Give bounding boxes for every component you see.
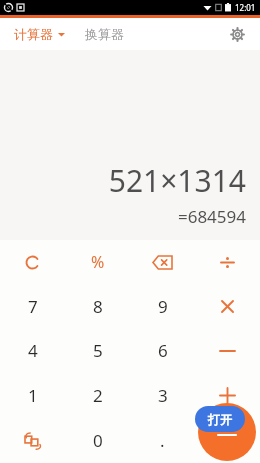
- button[interactable]: Multiply: [195, 284, 260, 328]
- staticText: 打开: [208, 412, 232, 427]
- button[interactable]: 4: [0, 328, 65, 373]
- button[interactable]: %: [65, 240, 130, 284]
- button[interactable]: Minus: [195, 328, 260, 373]
- staticText: 1: [28, 384, 38, 407]
- button[interactable]: Clear: [0, 240, 65, 284]
- button[interactable]: 打开: [195, 406, 245, 432]
- staticText: 8: [93, 295, 103, 318]
- staticText: 6: [158, 339, 168, 362]
- button[interactable]: Backspace: [130, 240, 195, 284]
- button[interactable]: 5: [65, 328, 130, 373]
- staticText: 0: [93, 429, 103, 452]
- button[interactable]: Convert: [0, 418, 65, 463]
- button[interactable]: 9: [130, 284, 195, 328]
- staticText: 521×1314: [108, 160, 246, 201]
- button[interactable]: 0: [65, 418, 130, 463]
- button[interactable]: 6: [130, 328, 195, 373]
- staticText: 计算器: [14, 26, 53, 42]
- staticText: 换算器: [85, 26, 124, 42]
- button[interactable]: 2: [65, 373, 130, 418]
- staticText: 12:01: [235, 2, 256, 13]
- button[interactable]: 换算器: [85, 26, 124, 42]
- staticText: %: [91, 251, 105, 273]
- button[interactable]: 计算器: [14, 26, 65, 42]
- staticText: =684594: [177, 205, 246, 228]
- button[interactable]: 7: [0, 284, 65, 328]
- button[interactable]: Equals: [198, 403, 256, 461]
- button[interactable]: .: [130, 418, 195, 463]
- staticText: 5: [93, 339, 103, 362]
- staticText: 2: [93, 384, 103, 407]
- staticText: 7: [28, 295, 38, 318]
- staticText: .: [160, 429, 165, 452]
- button[interactable]: Divide: [195, 240, 260, 284]
- staticText: 9: [158, 295, 168, 318]
- button[interactable]: Plus: [195, 373, 260, 418]
- button[interactable]: Settings: [226, 23, 248, 45]
- button[interactable]: 3: [130, 373, 195, 418]
- staticText: 4: [28, 339, 38, 362]
- staticText: 3: [158, 384, 168, 407]
- button[interactable]: 8: [65, 284, 130, 328]
- button[interactable]: 1: [0, 373, 65, 418]
